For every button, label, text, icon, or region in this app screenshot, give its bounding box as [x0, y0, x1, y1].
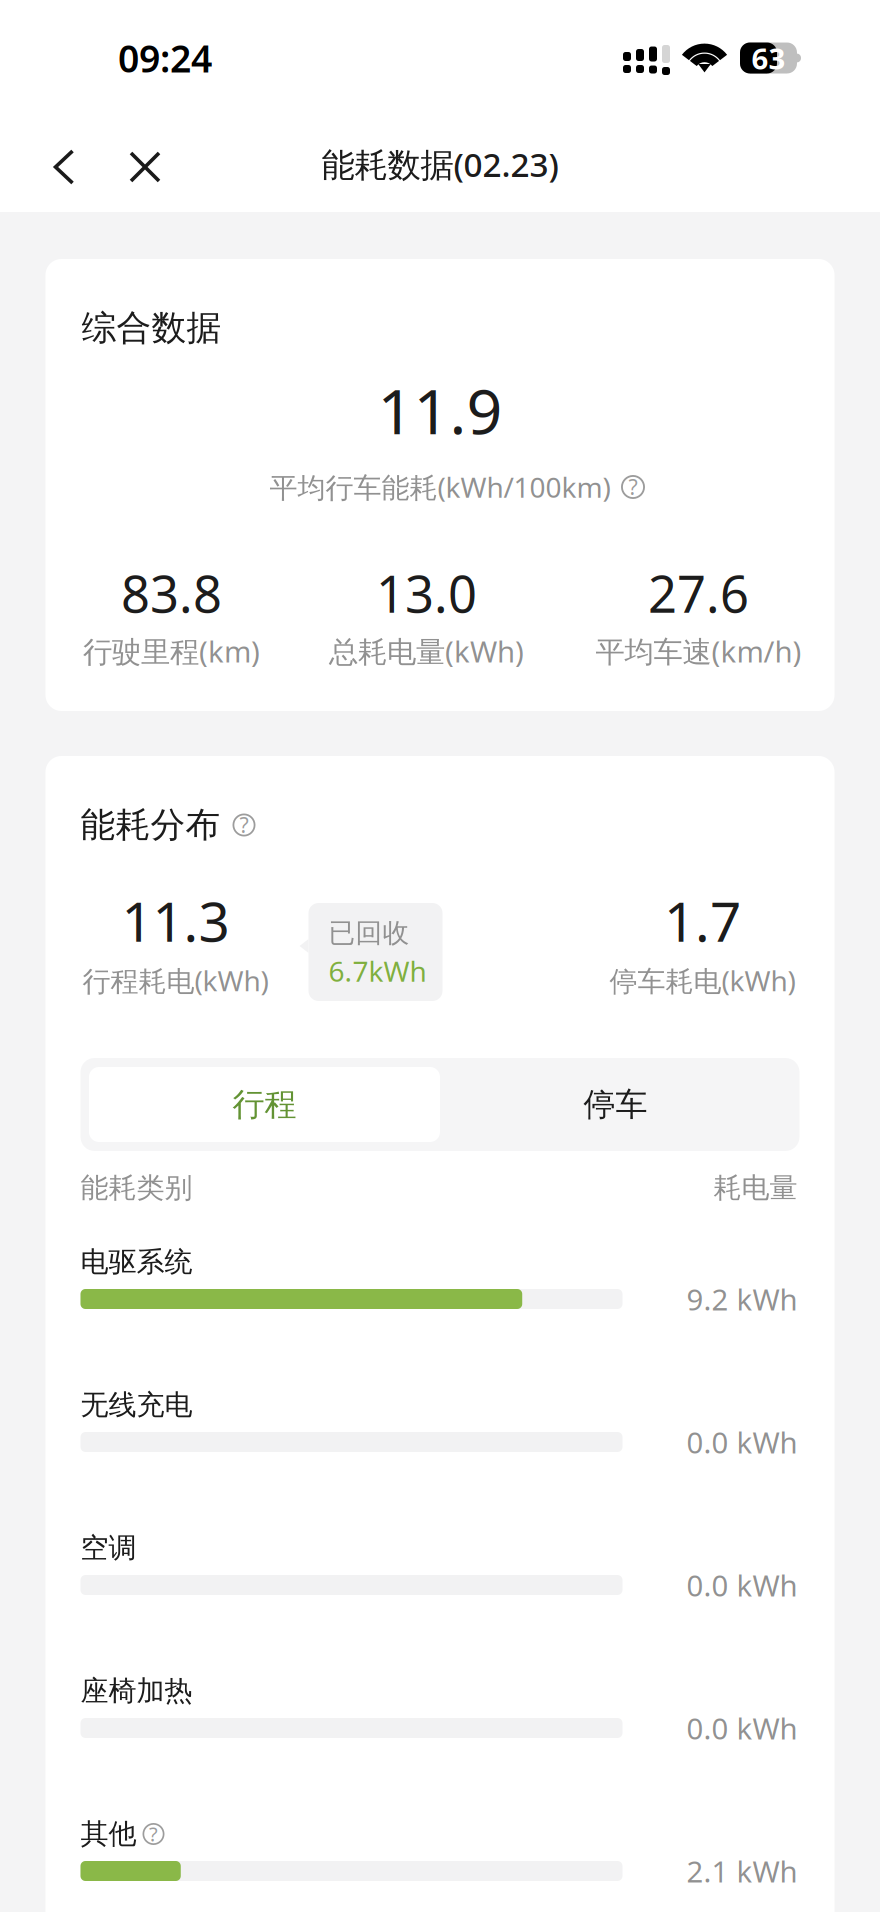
staticText: 行程耗电(kWh)	[82, 962, 268, 999]
staticText: 行程	[232, 1085, 296, 1124]
staticText: 63	[751, 38, 785, 77]
staticText: 停车	[583, 1085, 647, 1124]
staticText: 停车耗电(kWh)	[609, 962, 795, 999]
staticText: ?	[628, 472, 637, 501]
staticText: ?	[239, 810, 248, 839]
staticText: 6.7kWh	[328, 952, 426, 990]
button[interactable]: Back	[39, 132, 89, 202]
staticText: 空调	[80, 1531, 136, 1565]
button[interactable]: Close	[120, 132, 170, 202]
staticText: 其他	[80, 1817, 136, 1851]
staticText: 0.0 kWh	[686, 1422, 797, 1461]
staticText: 总耗电量(kWh)	[329, 631, 524, 670]
staticText: 1.7	[664, 884, 741, 957]
button[interactable]: 停车	[440, 1067, 791, 1142]
staticText: 83.8	[121, 559, 222, 627]
staticText: 电驱系统	[80, 1245, 192, 1279]
staticText: 11.3	[121, 884, 229, 957]
staticText: ?	[149, 1820, 158, 1847]
staticText: 2.1 kWh	[686, 1851, 797, 1890]
staticText: 27.6	[648, 559, 749, 627]
staticText: 座椅加热	[80, 1674, 192, 1708]
staticText: 无线充电	[80, 1388, 192, 1422]
staticText: 行驶里程(km)	[83, 631, 260, 670]
staticText: 已回收	[328, 917, 409, 949]
staticText: 平均车速(km/h)	[595, 631, 801, 670]
staticText: 综合数据	[81, 307, 221, 349]
staticText: 能耗类别	[80, 1171, 192, 1205]
staticText: 0.0 kWh	[686, 1565, 797, 1604]
staticText: 13.0	[376, 559, 477, 627]
staticText: 能耗数据(02.23)	[321, 142, 558, 186]
staticText: 9.2 kWh	[686, 1279, 797, 1318]
staticText: 能耗分布	[80, 804, 220, 846]
staticText: 0.0 kWh	[686, 1708, 797, 1747]
staticText: 11.9	[377, 368, 502, 452]
button[interactable]: 行程	[89, 1067, 440, 1142]
staticText: 09:24	[118, 33, 212, 83]
staticText: 耗电量	[713, 1171, 797, 1205]
staticText: 平均行车能耗(kWh/100km)	[269, 468, 610, 506]
